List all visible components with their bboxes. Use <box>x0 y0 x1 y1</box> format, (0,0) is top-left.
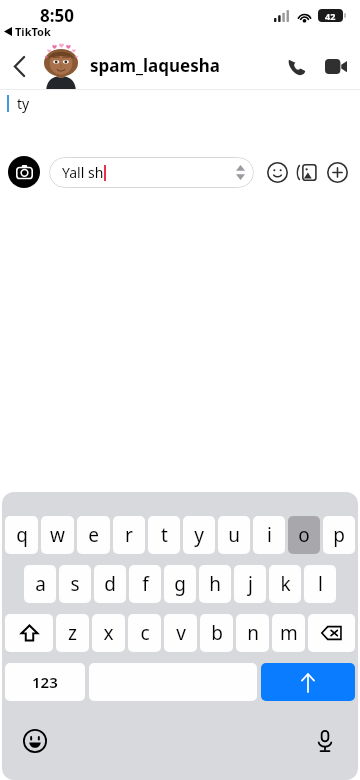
staticText: p <box>333 522 345 548</box>
button[interactable]: Backspace <box>308 614 355 652</box>
button[interactable]: spam_laquesha <box>90 54 220 77</box>
button[interactable]: k <box>269 565 301 603</box>
button[interactable]: j <box>234 565 266 603</box>
staticText: f <box>142 571 149 597</box>
staticText: 42 <box>325 10 336 22</box>
button[interactable]: o <box>288 516 320 554</box>
staticText: r <box>125 522 133 548</box>
button[interactable]: n <box>236 614 269 652</box>
staticText: s <box>70 571 80 597</box>
button[interactable]: Stickers <box>292 157 322 187</box>
staticText: TikTok <box>15 24 51 39</box>
button[interactable]: a <box>24 565 56 603</box>
staticText: e <box>88 522 99 548</box>
button[interactable]: More options <box>322 157 352 187</box>
button[interactable]: Video call <box>316 46 356 86</box>
staticText: k <box>280 571 291 597</box>
button[interactable]: b <box>200 614 233 652</box>
button[interactable]: Audio call <box>276 46 316 86</box>
button[interactable]: l <box>304 565 336 603</box>
button[interactable]: i <box>253 516 285 554</box>
staticText: a <box>35 571 46 597</box>
button[interactable]: u <box>218 516 250 554</box>
button[interactable]: 123 <box>5 663 85 701</box>
button[interactable]: Camera <box>8 156 40 188</box>
staticText: ty <box>17 94 30 113</box>
button[interactable]: t <box>148 516 180 554</box>
button[interactable]: Emoji keyboard <box>18 724 52 758</box>
staticText: z <box>68 620 77 646</box>
staticText: l <box>318 571 323 597</box>
staticText: d <box>104 571 116 597</box>
button[interactable]: Back <box>0 47 38 85</box>
button[interactable]: f <box>129 565 161 603</box>
button[interactable]: Dictation <box>308 724 342 758</box>
button[interactable]: v <box>164 614 197 652</box>
button[interactable]: w <box>41 516 74 554</box>
staticText: x <box>103 620 114 646</box>
staticText: j <box>248 571 253 597</box>
button[interactable]: r <box>113 516 145 554</box>
staticText: Yall sh <box>62 163 104 182</box>
button[interactable]: Profile photo <box>38 43 84 89</box>
staticText: i <box>267 522 272 548</box>
staticText: w <box>50 522 65 548</box>
button[interactable]: c <box>128 614 161 652</box>
staticText: y <box>194 522 204 548</box>
staticText: n <box>247 620 259 646</box>
staticText: c <box>140 620 150 646</box>
staticText: o <box>298 522 310 548</box>
button[interactable]: g <box>164 565 196 603</box>
button[interactable]: q <box>5 516 38 554</box>
button[interactable]: d <box>94 565 126 603</box>
button[interactable]: Emoji <box>262 157 292 187</box>
button[interactable]: s <box>59 565 91 603</box>
staticText: t <box>161 522 168 548</box>
staticText: m <box>280 620 298 646</box>
button[interactable]: Yall sh <box>49 157 254 188</box>
button[interactable]: p <box>323 516 355 554</box>
staticText: u <box>228 522 240 548</box>
button[interactable]: x <box>92 614 125 652</box>
staticText: q <box>16 522 28 548</box>
staticText: v <box>176 620 186 646</box>
staticText: b <box>211 620 223 646</box>
staticText: 123 <box>32 672 58 692</box>
button[interactable]: h <box>199 565 231 603</box>
button[interactable]: e <box>77 516 110 554</box>
staticText: 8:50 <box>40 4 74 27</box>
staticText: g <box>174 571 186 597</box>
button[interactable]: y <box>183 516 215 554</box>
button[interactable]: z <box>56 614 89 652</box>
button[interactable]: Send <box>261 663 355 701</box>
button[interactable]: Shift <box>5 614 53 652</box>
button[interactable]: m <box>272 614 305 652</box>
staticText: h <box>209 571 221 597</box>
